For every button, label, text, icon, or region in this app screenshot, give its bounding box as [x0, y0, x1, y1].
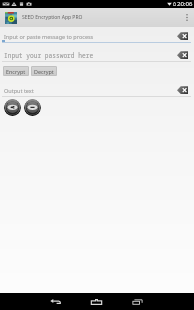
staticText: Decrypt — [34, 68, 54, 75]
staticText: Encrypt — [6, 68, 26, 75]
button[interactable]: More options — [180, 8, 194, 27]
button[interactable]: Clear text — [177, 32, 188, 40]
button[interactable]: Home — [76, 293, 117, 310]
button[interactable]: Share — [4, 99, 21, 116]
button[interactable]: Clear text — [177, 51, 188, 59]
staticText: SEED Encryption App PRO — [22, 14, 83, 21]
button[interactable]: Clear text — [177, 86, 188, 94]
button[interactable]: Input your password here — [0, 47, 194, 62]
button[interactable]: Back — [35, 293, 76, 310]
button[interactable]: Decrypt — [31, 66, 57, 76]
button[interactable]: Recent apps — [117, 293, 158, 310]
staticText: Input your password here — [4, 51, 94, 59]
staticText: Output text — [4, 87, 34, 94]
button[interactable]: Input or paste message to process — [0, 28, 194, 43]
staticText: 20:06 — [177, 0, 193, 8]
button[interactable]: Output text — [0, 82, 194, 97]
button[interactable]: Copy — [24, 99, 41, 116]
staticText: Input or paste message to process — [4, 33, 94, 40]
button[interactable]: Encrypt — [3, 66, 29, 76]
